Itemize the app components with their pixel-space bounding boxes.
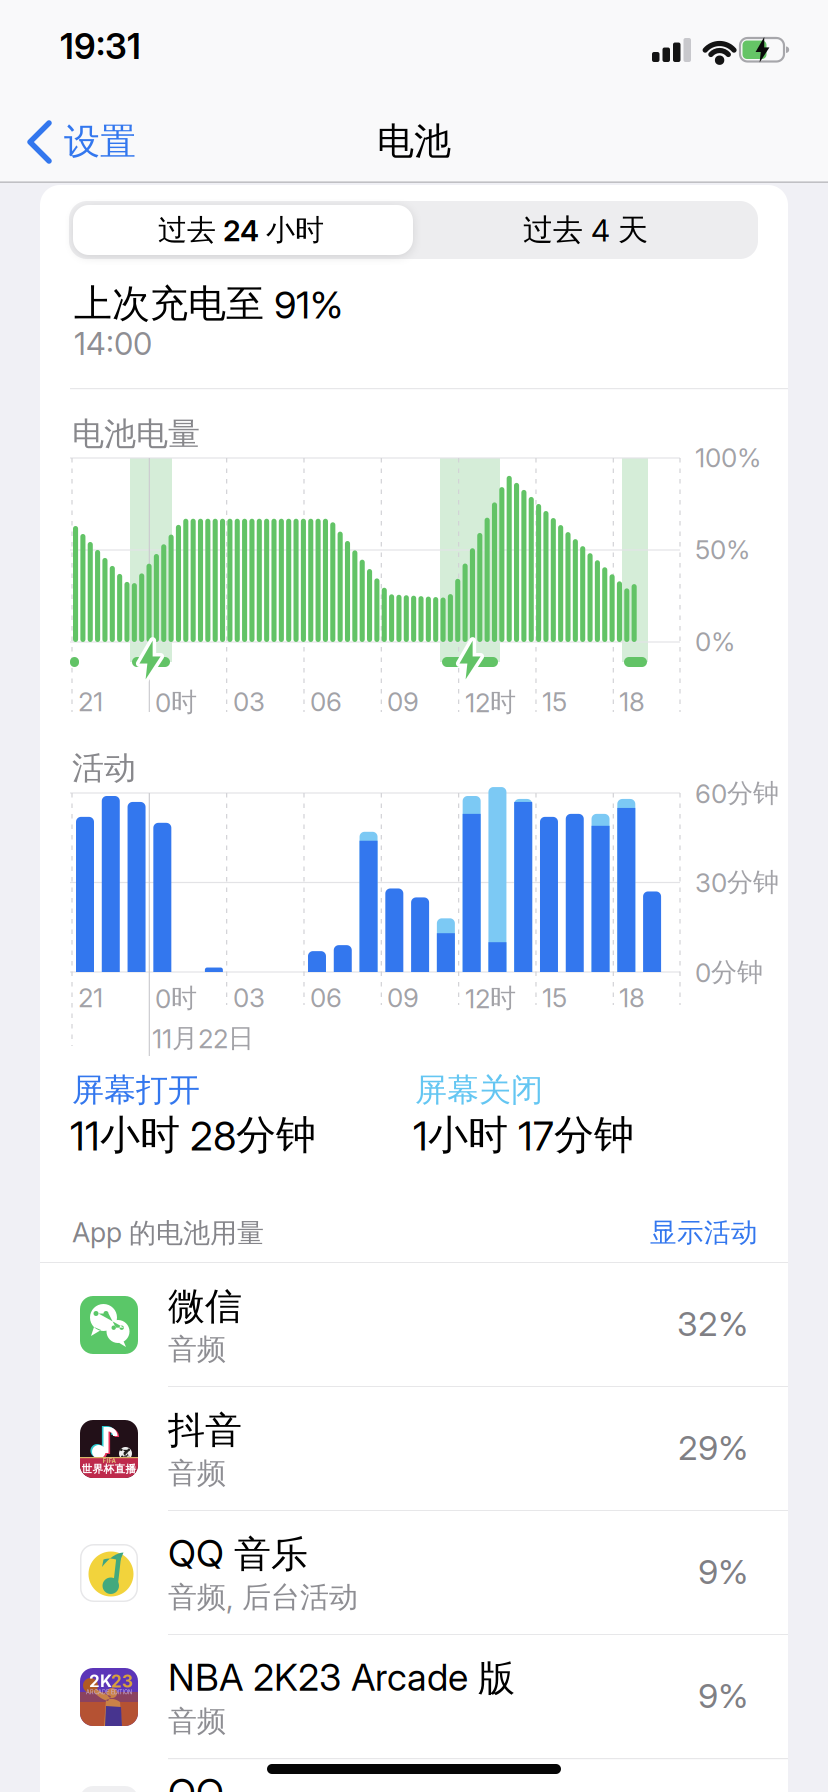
staticText: 06 bbox=[310, 686, 342, 717]
staticText: 18 bbox=[619, 686, 645, 717]
staticText: App 的电池用量 bbox=[72, 1216, 264, 1250]
staticText: 21 bbox=[78, 982, 103, 1013]
staticText: 音频 bbox=[168, 1703, 226, 1739]
staticText: 抖音 bbox=[168, 1407, 242, 1454]
staticText: 活动 bbox=[72, 748, 136, 788]
staticText: NBA 2K23 Arcade 版 bbox=[168, 1655, 515, 1702]
staticText: 100% bbox=[695, 442, 761, 473]
staticText: 14:00 bbox=[74, 325, 152, 362]
staticText: 设置 bbox=[64, 119, 136, 164]
staticText: QQ 音乐 bbox=[168, 1531, 308, 1578]
staticText: 11小时 28分钟 bbox=[70, 1110, 316, 1160]
staticText: 9% bbox=[698, 1675, 748, 1716]
staticText: 09 bbox=[387, 686, 419, 717]
staticText: 0% bbox=[695, 626, 735, 657]
staticText: 23 bbox=[111, 1671, 133, 1692]
button[interactable]: QQ bbox=[40, 1758, 788, 1792]
staticText: 03 bbox=[233, 982, 265, 1013]
staticText: 过去 24 小时 bbox=[158, 212, 324, 248]
button[interactable]: 设置 bbox=[0, 0, 140, 182]
staticText: 21 bbox=[78, 686, 103, 717]
staticText: 上次充电至 91% bbox=[74, 280, 343, 328]
staticText: 60分钟 bbox=[695, 777, 779, 810]
staticText: 0时 bbox=[155, 982, 197, 1015]
staticText: 12时 bbox=[465, 982, 516, 1015]
staticText: 09 bbox=[387, 982, 419, 1013]
staticText: 29% bbox=[678, 1427, 748, 1468]
staticText: 0分钟 bbox=[695, 956, 763, 989]
button[interactable]: 2K bbox=[40, 1635, 788, 1758]
button[interactable]: 显示活动 bbox=[458, 1216, 758, 1249]
staticText: ARCADE EDITION bbox=[86, 1689, 132, 1696]
button[interactable]: 过去 24 小时 bbox=[69, 201, 413, 259]
staticText: 屏幕关闭 bbox=[415, 1070, 543, 1110]
button[interactable]: 过去 4 天 bbox=[413, 201, 758, 259]
staticText: 2K bbox=[89, 1671, 112, 1692]
staticText: FIFA bbox=[102, 1457, 115, 1465]
staticText: 音频 bbox=[168, 1455, 226, 1491]
button[interactable]: QQ 音乐 bbox=[40, 1511, 788, 1634]
staticText: 15 bbox=[542, 982, 567, 1013]
staticText: 18 bbox=[619, 982, 645, 1013]
staticText: 1小时 17分钟 bbox=[413, 1110, 634, 1160]
staticText: 15 bbox=[542, 686, 567, 717]
staticText: 12时 bbox=[465, 686, 516, 719]
staticText: 50% bbox=[695, 534, 750, 565]
staticText: 03 bbox=[233, 686, 265, 717]
staticText: 电池 bbox=[377, 118, 451, 165]
staticText: 音频, 后台活动 bbox=[168, 1579, 358, 1615]
staticText: 音频 bbox=[168, 1331, 226, 1367]
button[interactable]: FIFA bbox=[40, 1387, 788, 1510]
staticText: 微信 bbox=[168, 1283, 242, 1330]
staticText: 电池电量 bbox=[72, 414, 200, 454]
staticText: QQ bbox=[168, 1770, 224, 1792]
staticText: 06 bbox=[310, 982, 342, 1013]
staticText: 32% bbox=[677, 1303, 748, 1344]
staticText: 9% bbox=[698, 1551, 748, 1592]
staticText: 显示活动 bbox=[650, 1216, 758, 1249]
staticText: 11月22日 bbox=[152, 1022, 254, 1055]
button[interactable]: 微信 bbox=[40, 1263, 788, 1386]
staticText: 0时 bbox=[155, 686, 197, 719]
staticText: 世界杯直播 bbox=[81, 1462, 136, 1476]
staticText: 屏幕打开 bbox=[72, 1070, 200, 1110]
staticText: 30分钟 bbox=[695, 866, 779, 899]
staticText: 19:31 bbox=[60, 25, 141, 67]
staticText: 过去 4 天 bbox=[523, 211, 648, 249]
